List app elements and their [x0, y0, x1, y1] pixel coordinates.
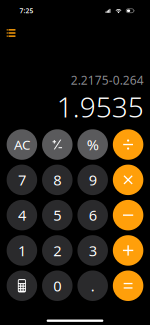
button[interactable]: Add	[113, 235, 143, 266]
staticText: 3	[89, 241, 97, 260]
staticText: 8	[53, 170, 61, 190]
staticText: 1	[18, 241, 26, 260]
staticText: .	[91, 276, 95, 295]
button[interactable]: 0	[42, 270, 73, 301]
staticText: 9	[89, 170, 97, 190]
staticText: %	[87, 135, 99, 154]
button[interactable]: %	[77, 129, 108, 160]
button[interactable]: 7	[7, 165, 37, 195]
staticText: 4	[18, 205, 26, 225]
staticText: 5	[53, 205, 61, 225]
button[interactable]: Equals	[113, 270, 143, 301]
button[interactable]: 5	[42, 200, 73, 230]
button[interactable]: 4	[7, 200, 37, 230]
button[interactable]: History	[2, 23, 21, 42]
staticText: AC	[14, 136, 30, 153]
staticText: 0	[53, 276, 61, 295]
button[interactable]: 8	[42, 165, 73, 195]
staticText: 7	[18, 170, 26, 190]
button[interactable]: AC	[7, 129, 37, 160]
button[interactable]: 6	[77, 200, 108, 230]
button[interactable]: Subtract	[113, 200, 143, 230]
button[interactable]: Calculator	[7, 270, 37, 301]
staticText: 2	[53, 241, 61, 260]
button[interactable]: 3	[77, 235, 108, 266]
button[interactable]: 1	[7, 235, 37, 266]
staticText: 6	[89, 205, 97, 225]
staticText: 7:25	[19, 6, 33, 15]
staticText: 2.2175-0.264	[71, 72, 144, 88]
button[interactable]: 2	[42, 235, 73, 266]
button[interactable]: .	[77, 270, 108, 301]
button[interactable]: 9	[77, 165, 108, 195]
button[interactable]: Multiply	[113, 165, 143, 195]
staticText: 1.9535	[57, 88, 144, 125]
button[interactable]: Divide	[113, 129, 143, 160]
button[interactable]: Plus minus	[42, 129, 73, 160]
